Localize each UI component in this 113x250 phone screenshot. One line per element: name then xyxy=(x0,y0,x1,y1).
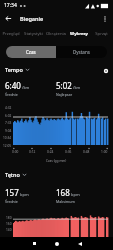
button[interactable]: Czas xyxy=(6,46,56,58)
staticText: /km xyxy=(73,85,81,90)
staticText: Najlepsze xyxy=(56,92,73,97)
staticText: 0:48 xyxy=(83,150,90,154)
button[interactable]: Home xyxy=(49,237,65,250)
button[interactable]: Statystyki xyxy=(22,27,44,40)
staticText: 4:32 xyxy=(5,106,12,110)
staticText: Statystyki xyxy=(24,31,43,37)
button[interactable]: Back xyxy=(72,237,88,250)
staticText: 6:02 xyxy=(5,114,12,118)
button[interactable]: Recent apps xyxy=(26,237,42,250)
staticText: Bieganie xyxy=(20,15,44,23)
staticText: 168 xyxy=(56,187,70,198)
staticText: 0:12 xyxy=(29,150,36,154)
staticText: 157 xyxy=(5,187,19,198)
button[interactable]: Okrążenia xyxy=(44,27,67,40)
staticText: 9:04 xyxy=(5,129,12,133)
button[interactable]: Dystans xyxy=(56,46,107,58)
staticText: Sprzęt xyxy=(95,31,108,37)
button[interactable]: Tempo xyxy=(5,66,30,73)
staticText: Tętno xyxy=(5,171,20,178)
staticText: Średnie xyxy=(5,199,18,204)
staticText: Okrążenia xyxy=(46,31,66,37)
button[interactable]: Back xyxy=(2,12,15,25)
button[interactable]: Sprzęt xyxy=(90,27,113,40)
staticText: 17:34 xyxy=(4,2,17,9)
button[interactable]: Information xyxy=(103,68,109,74)
staticText: Wykresy xyxy=(70,31,88,37)
staticText: Przegląd xyxy=(2,31,20,37)
staticText: 0:00 xyxy=(12,150,19,154)
staticText: Dystans xyxy=(73,49,90,55)
staticText: 1:00 xyxy=(101,150,108,154)
staticText: Maksimum xyxy=(56,199,75,204)
staticText: bpm xyxy=(71,192,80,197)
staticText: 0:24 xyxy=(47,150,54,154)
staticText: 12:05 xyxy=(3,144,12,148)
staticText: 160 xyxy=(6,222,12,226)
staticText: 6:40 xyxy=(5,80,21,91)
staticText: 180 xyxy=(6,216,12,220)
staticText: Czas xyxy=(26,49,36,55)
button[interactable]: Tętno xyxy=(5,171,27,178)
staticText: 7:33 xyxy=(5,121,12,125)
button[interactable]: Przegląd xyxy=(0,27,22,40)
staticText: 0:36 xyxy=(65,150,72,154)
staticText: 140 xyxy=(6,228,12,232)
staticText: Czas (gg:mm) xyxy=(46,159,67,163)
staticText: bpm xyxy=(20,192,29,197)
button[interactable]: More options xyxy=(99,13,111,25)
staticText: Tempo xyxy=(5,66,23,73)
staticText: 5:02 xyxy=(56,80,72,91)
button[interactable]: Wykresy xyxy=(67,27,90,40)
staticText: Średnie xyxy=(5,92,18,97)
staticText: 10:34 xyxy=(3,136,12,140)
staticText: /km xyxy=(22,85,30,90)
